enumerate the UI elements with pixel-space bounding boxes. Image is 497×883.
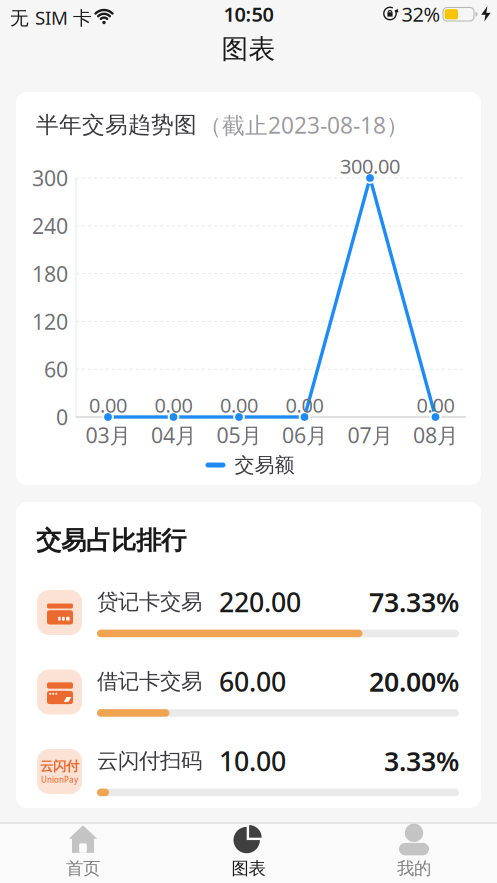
staticText: 220.00 [219,584,301,620]
staticText: 300.00 [340,153,400,179]
staticText: 交易额 [234,453,294,477]
button[interactable]: 我的 [354,824,474,880]
staticText: 07月 [347,421,392,449]
staticText: 10:50 [223,1,273,27]
staticText: 0.00 [285,392,323,418]
staticText: 我的 [397,858,431,879]
staticText: 云闪付扫码 [97,748,202,774]
staticText: 0.00 [89,392,127,418]
staticText: 73.33% [369,584,459,620]
staticText: 图表 [221,33,275,65]
staticText: 10.00 [219,743,286,779]
staticText: 半年交易趋势图 [36,111,197,139]
staticText: 06月 [282,421,327,449]
staticText: 贷记卡交易 [97,589,202,615]
staticText: 20.00% [369,664,459,699]
staticText: 32% [401,1,440,27]
staticText: 首页 [66,858,100,879]
staticText: UnionPay [41,774,78,785]
staticText: 0.00 [220,392,258,418]
staticText: 240 [32,212,68,240]
staticText: 04月 [151,421,196,449]
staticText: 180 [32,259,68,288]
staticText: 3.33% [384,743,459,779]
staticText: 03月 [85,421,130,449]
staticText: 0 [56,403,68,431]
staticText: 05月 [216,421,261,449]
button[interactable]: 图表 [188,824,308,880]
staticText: 云闪付 [40,758,79,774]
staticText: 0.00 [154,392,192,418]
staticText: 借记卡交易 [97,668,202,695]
staticText: 交易占比排行 [36,525,186,556]
staticText: 300 [32,164,68,192]
staticText: 08月 [413,421,458,449]
button[interactable]: 首页 [23,824,143,880]
staticText: 无 SIM 卡 [10,5,92,30]
staticText: 图表 [231,858,265,879]
staticText: 120 [32,307,68,335]
staticText: 0.00 [416,392,454,418]
staticText: （截止2023-08-18） [199,110,409,140]
staticText: 60.00 [219,664,286,699]
staticText: 60 [44,355,68,383]
